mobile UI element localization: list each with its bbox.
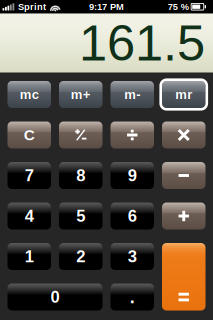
staticText: mc: [20, 87, 39, 102]
staticText: 2: [76, 247, 85, 266]
staticText: 9:17 PM: [89, 1, 124, 12]
button[interactable]: memory recall: [162, 81, 205, 108]
button[interactable]: 9: [110, 162, 154, 189]
button[interactable]: divide: [110, 121, 154, 148]
staticText: m-: [124, 87, 140, 102]
button[interactable]: 2: [59, 243, 102, 270]
staticText: 161.5: [79, 15, 205, 71]
staticText: 7: [25, 166, 34, 185]
staticText: 5: [76, 207, 85, 225]
button[interactable]: plus minus: [59, 121, 102, 148]
button[interactable]: 7: [7, 162, 51, 189]
button[interactable]: 3: [110, 243, 154, 270]
staticText: 8: [76, 166, 85, 185]
button[interactable]: 6: [110, 202, 154, 229]
button[interactable]: 4: [7, 202, 51, 229]
button[interactable]: memory subtract: [110, 81, 154, 108]
staticText: C: [24, 126, 35, 143]
button[interactable]: 5: [59, 202, 102, 229]
staticText: .: [130, 287, 135, 307]
staticText: 75 %: [168, 1, 189, 12]
staticText: 4: [25, 207, 34, 225]
staticText: 6: [128, 207, 137, 225]
staticText: Sprint: [15, 1, 46, 12]
staticText: mr: [175, 87, 192, 102]
staticText: 1: [25, 247, 34, 266]
staticText: 9: [128, 166, 137, 185]
button[interactable]: multiply: [162, 121, 205, 148]
button[interactable]: 1: [7, 243, 51, 270]
button[interactable]: minus: [162, 162, 205, 189]
staticText: m+: [71, 87, 91, 102]
staticText: 3: [128, 247, 137, 266]
button[interactable]: 0: [7, 283, 102, 310]
button[interactable]: clear: [7, 121, 51, 148]
button[interactable]: memory clear: [7, 81, 51, 108]
button[interactable]: equals: [162, 243, 205, 310]
button[interactable]: plus: [162, 202, 205, 229]
button[interactable]: decimal point: [110, 283, 154, 310]
button[interactable]: memory add: [59, 81, 102, 108]
staticText: 0: [50, 288, 59, 306]
button[interactable]: 8: [59, 162, 102, 189]
